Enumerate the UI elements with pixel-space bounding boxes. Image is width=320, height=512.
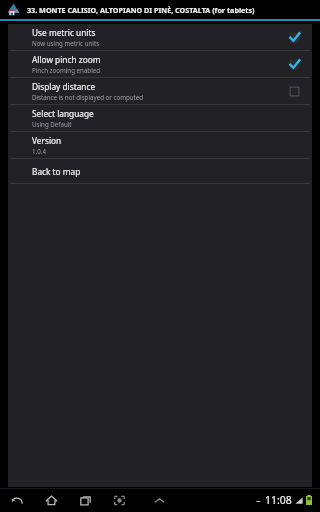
staticText: Select language [32, 108, 94, 119]
button[interactable]: Use metric units [8, 24, 312, 50]
button[interactable]: Select language [8, 105, 312, 131]
staticText: Back to map [32, 166, 81, 177]
button[interactable]: Expand [148, 489, 170, 511]
button[interactable]: Display distance [8, 78, 312, 104]
staticText: Version [32, 135, 62, 146]
button[interactable]: Back to map [8, 159, 312, 183]
staticText: Use metric units [32, 27, 96, 38]
staticText: – [256, 494, 261, 506]
staticText: Allow pinch zoom [32, 54, 101, 65]
staticText: Using Default [32, 120, 72, 128]
staticText: Distance is not displayed or computed [32, 93, 144, 101]
button[interactable]: Unchecked [286, 83, 302, 99]
button[interactable]: Recent apps [74, 489, 96, 511]
button[interactable]: Back [6, 489, 28, 511]
staticText: 33. MONTE CALISIO, ALTOPIANO DI PINÈ, CO… [27, 5, 255, 15]
button[interactable]: Home [40, 489, 62, 511]
staticText: 11:08 [265, 493, 292, 507]
staticText: 1.0.4 [32, 147, 46, 155]
staticText: Now using metric units [32, 39, 100, 47]
button[interactable]: Checked [286, 29, 302, 45]
button[interactable]: Allow pinch zoom [8, 51, 312, 77]
button[interactable]: Version [8, 132, 312, 158]
staticText: Display distance [32, 81, 96, 92]
staticText: Pinch zooming enabled [32, 66, 101, 74]
button[interactable]: Screenshot [108, 489, 130, 511]
button[interactable]: Checked [286, 56, 302, 72]
